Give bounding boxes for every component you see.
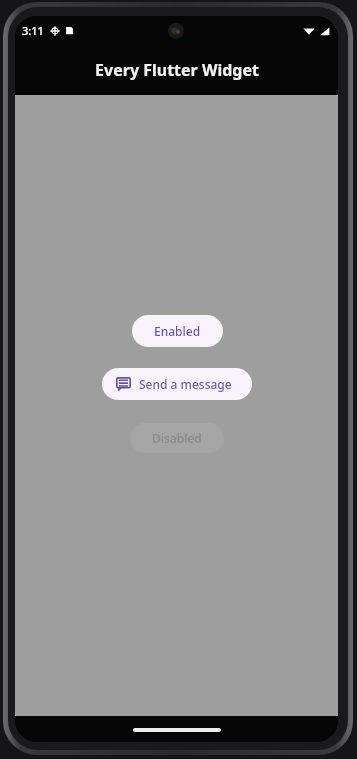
other: Home gesture bar xyxy=(133,728,221,732)
button[interactable]: Send a message xyxy=(102,368,252,400)
staticText: Send a message xyxy=(139,376,232,392)
button: Disabled xyxy=(130,423,224,453)
staticText: Every Flutter Widget xyxy=(95,59,259,81)
staticText: 3:11 xyxy=(22,23,44,38)
button[interactable]: Enabled xyxy=(132,315,223,347)
staticText: Enabled xyxy=(154,323,201,339)
staticText: Disabled xyxy=(152,430,202,446)
